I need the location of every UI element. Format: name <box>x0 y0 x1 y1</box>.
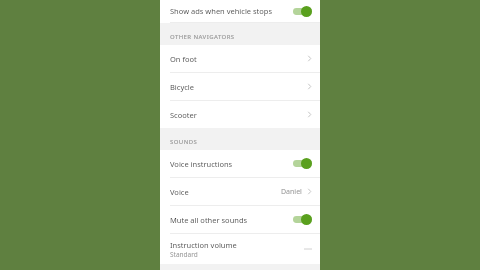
staticText: Standard <box>170 250 198 259</box>
button[interactable]: Show ads when vehicle stops <box>160 0 320 22</box>
staticText: Voice <box>170 187 189 197</box>
button[interactable]: Scooter <box>160 101 320 128</box>
staticText: OTHER NAVIGATORS <box>170 33 235 41</box>
staticText: SOUNDS <box>170 138 198 146</box>
button[interactable]: On foot <box>160 45 320 72</box>
staticText: Scooter <box>170 110 197 120</box>
staticText: Instruction volume <box>170 240 237 250</box>
button[interactable]: Voice <box>160 178 320 205</box>
staticText: On foot <box>170 54 197 64</box>
staticText: Daniel <box>281 187 302 197</box>
button[interactable]: Voice instructions <box>160 150 320 177</box>
button[interactable]: Instruction volume <box>160 234 320 264</box>
staticText: Mute all other sounds <box>170 215 248 225</box>
button[interactable]: Bicycle <box>160 73 320 100</box>
staticText: Voice instructions <box>170 159 233 169</box>
button[interactable]: Mute all other sounds <box>160 206 320 233</box>
staticText: Show ads when vehicle stops <box>170 6 273 16</box>
staticText: Bicycle <box>170 82 194 92</box>
